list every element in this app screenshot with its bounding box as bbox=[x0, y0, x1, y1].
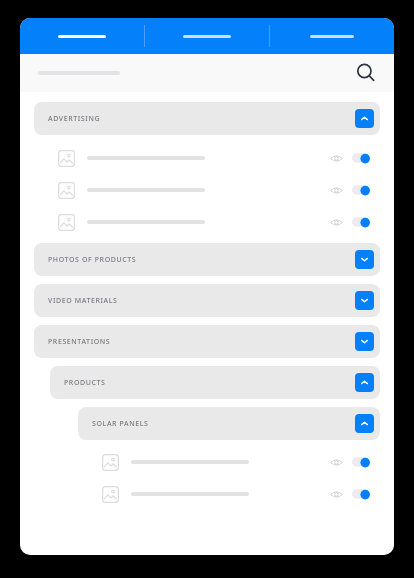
button[interactable]: Search bbox=[352, 59, 380, 87]
button[interactable]: Preview bbox=[20, 478, 394, 510]
button[interactable]: Toggle visibility bbox=[352, 183, 372, 197]
staticText: PRODUCTS bbox=[64, 378, 106, 388]
button[interactable]: Collapse bbox=[355, 373, 374, 392]
button[interactable]: Expand bbox=[355, 291, 374, 310]
button[interactable]: Toggle visibility bbox=[352, 215, 372, 229]
button[interactable]: Expand bbox=[355, 332, 374, 351]
button[interactable]: Tab bbox=[145, 18, 269, 54]
button[interactable]: Preview bbox=[20, 142, 394, 174]
button[interactable]: Collapse bbox=[355, 414, 374, 433]
staticText: VIDEO MATERIALS bbox=[48, 296, 118, 306]
button[interactable]: Toggle visibility bbox=[352, 487, 372, 501]
button[interactable]: SOLAR PANELS bbox=[78, 407, 380, 440]
button[interactable]: ADVERTISING bbox=[34, 102, 380, 135]
button[interactable]: Toggle visibility bbox=[352, 151, 372, 165]
staticText: ADVERTISING bbox=[48, 114, 101, 124]
button[interactable]: Preview bbox=[20, 174, 394, 206]
button[interactable]: Preview bbox=[328, 454, 344, 470]
button[interactable]: PRODUCTS bbox=[50, 366, 380, 399]
button[interactable]: Preview bbox=[20, 206, 394, 238]
button[interactable]: Toggle visibility bbox=[352, 455, 372, 469]
staticText: PHOTOS OF PRODUCTS bbox=[48, 255, 137, 265]
button[interactable]: Preview bbox=[328, 214, 344, 230]
button[interactable]: Preview bbox=[20, 446, 394, 478]
button[interactable]: Selected tab bbox=[20, 18, 144, 54]
button[interactable]: Preview bbox=[328, 486, 344, 502]
button[interactable]: Expand bbox=[355, 250, 374, 269]
button[interactable]: Preview bbox=[328, 182, 344, 198]
button[interactable]: Tab bbox=[270, 18, 394, 54]
button[interactable]: VIDEO MATERIALS bbox=[34, 284, 380, 317]
button[interactable]: PHOTOS OF PRODUCTS bbox=[34, 243, 380, 276]
staticText: PRESENTATIONS bbox=[48, 337, 111, 347]
staticText: SOLAR PANELS bbox=[92, 419, 149, 429]
button[interactable]: Preview bbox=[328, 150, 344, 166]
button[interactable]: Collapse bbox=[355, 109, 374, 128]
button[interactable]: PRESENTATIONS bbox=[34, 325, 380, 358]
